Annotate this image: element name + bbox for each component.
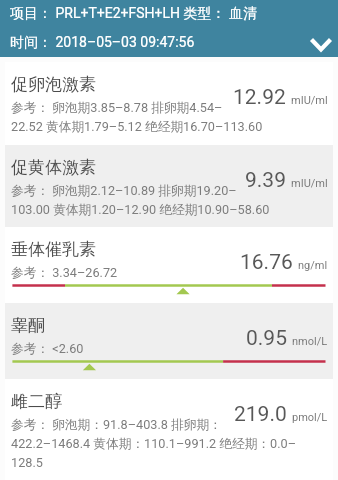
staticText: 睾酮: [11, 315, 45, 336]
staticText: 参考： 3.34–26.72: [11, 265, 118, 281]
staticText: 项目： PRL+T+E2+FSH+LH 类型： 血清: [10, 5, 257, 23]
staticText: mIU/ml: [291, 177, 328, 190]
staticText: 参考： 卵泡期2.12–10.89 排卵期19.20– 103.00 黄体期1.…: [11, 183, 270, 218]
staticText: ng/ml: [298, 259, 328, 272]
staticText: pmol/L: [292, 411, 328, 424]
staticText: 219.0: [234, 402, 287, 427]
staticText: 时间： 2018–05–03 09:47:56: [10, 34, 195, 52]
button[interactable]: 垂体催乳素: [5, 227, 333, 303]
staticText: 16.76: [240, 250, 293, 275]
button[interactable]: 雌二醇: [5, 379, 333, 480]
button[interactable]: 睾酮: [5, 303, 333, 379]
staticText: 参考： 卵泡期：91.8–403.8 排卵期： 422.2–1468.4 黄体期…: [11, 417, 296, 470]
staticText: 参考： <2.60: [11, 341, 84, 357]
staticText: 参考： 卵泡期3.85–8.78 排卵期4.54– 22.52 黄体期1.79–…: [11, 100, 263, 135]
staticText: nmol/L: [292, 335, 328, 348]
staticText: 雌二醇: [11, 391, 62, 412]
button[interactable]: Collapse details: [310, 37, 334, 53]
staticText: 促黄体激素: [11, 157, 96, 178]
staticText: 促卵泡激素: [11, 74, 96, 95]
staticText: mIU/ml: [291, 94, 328, 107]
staticText: 9.39: [245, 168, 286, 193]
button[interactable]: 促卵泡激素: [5, 62, 333, 145]
staticText: 垂体催乳素: [11, 239, 96, 260]
button[interactable]: 促黄体激素: [5, 145, 333, 227]
staticText: 0.95: [246, 326, 287, 351]
staticText: 12.92: [233, 85, 286, 110]
